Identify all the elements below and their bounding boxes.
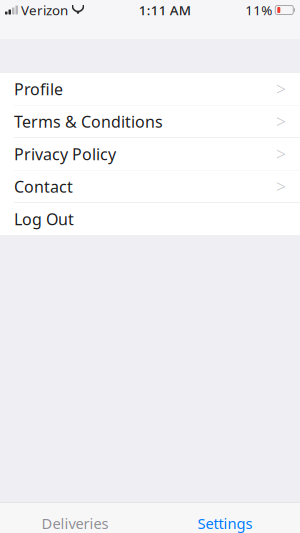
- staticText: Log Out: [14, 208, 74, 230]
- staticText: Verizon: [21, 1, 68, 19]
- button[interactable]: Deliveries: [0, 503, 150, 533]
- button[interactable]: Log Out: [0, 203, 300, 235]
- staticText: >: [276, 175, 286, 198]
- staticText: Terms & Conditions: [14, 111, 163, 132]
- staticText: Contact: [14, 176, 73, 197]
- staticText: >: [276, 77, 286, 100]
- staticText: Profile: [14, 78, 63, 100]
- button[interactable]: Contact: [0, 170, 300, 202]
- staticText: 1:11 AM: [139, 1, 191, 19]
- button[interactable]: Terms & Conditions: [0, 105, 300, 137]
- staticText: Settings: [197, 513, 252, 533]
- staticText: 11%: [245, 1, 272, 19]
- staticText: Deliveries: [41, 513, 108, 533]
- button[interactable]: Privacy Policy: [0, 138, 300, 170]
- staticText: >: [276, 110, 286, 133]
- staticText: Privacy Policy: [14, 143, 116, 165]
- button[interactable]: Profile: [0, 73, 300, 105]
- button[interactable]: Settings: [150, 503, 300, 533]
- staticText: >: [276, 142, 286, 165]
